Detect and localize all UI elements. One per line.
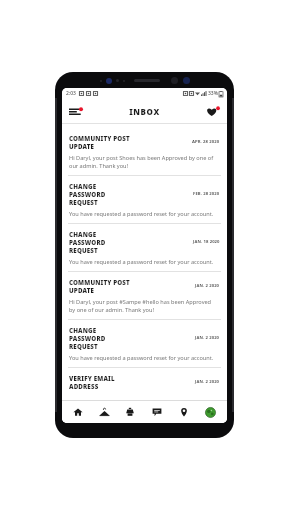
staticText: 2:03 [66, 90, 76, 97]
button[interactable]: Places [170, 401, 197, 423]
staticText: VERIFY EMAIL ADDRESS [69, 374, 132, 390]
staticText: Hi Daryl, your post #Sampe #hello has be… [69, 298, 218, 314]
button[interactable]: Hangers [91, 401, 117, 423]
button[interactable]: Shirts [117, 401, 143, 423]
button[interactable]: Menu [67, 102, 85, 120]
staticText: COMMUNITY POST UPDATE [69, 134, 130, 150]
staticText: COMMUNITY POST UPDATE [69, 278, 132, 294]
staticText: JAN. 2 2020 [195, 335, 220, 341]
staticText: 33% [208, 90, 218, 97]
staticText: CHANGE PASSWORD REQUEST [69, 326, 132, 350]
staticText: CHANGE PASSWORD REQUEST [69, 182, 131, 206]
button[interactable]: Messages [143, 401, 170, 423]
button[interactable]: COMMUNITY POST UPDATE [62, 128, 227, 176]
staticText: You have requested a password reset for … [69, 258, 218, 266]
staticText: APR. 28 2020 [192, 139, 220, 145]
button[interactable]: Home [65, 401, 91, 423]
staticText: JAN. 2 2020 [195, 283, 220, 289]
button[interactable]: Favorites [204, 102, 222, 120]
staticText: CHANGE PASSWORD REQUEST [69, 230, 131, 254]
button[interactable]: CHANGE PASSWORD REQUEST [62, 320, 227, 368]
staticText: You have requested a password reset for … [69, 354, 218, 362]
button[interactable]: CHANGE PASSWORD REQUEST [62, 224, 227, 272]
button[interactable]: Profile [197, 401, 224, 423]
button[interactable]: CHANGE PASSWORD REQUEST [62, 176, 227, 224]
staticText: Hi Daryl, your post Shoes has been Appro… [69, 154, 218, 170]
staticText: FEB. 28 2020 [193, 191, 220, 197]
staticText: JAN. 18 2020 [193, 239, 220, 245]
staticText: You have requested a password reset for … [69, 210, 218, 218]
staticText: INBOX [129, 106, 160, 117]
button[interactable]: VERIFY EMAIL ADDRESS [62, 368, 227, 400]
button[interactable]: COMMUNITY POST UPDATE [62, 272, 227, 320]
staticText: JAN. 2 2020 [195, 379, 220, 385]
